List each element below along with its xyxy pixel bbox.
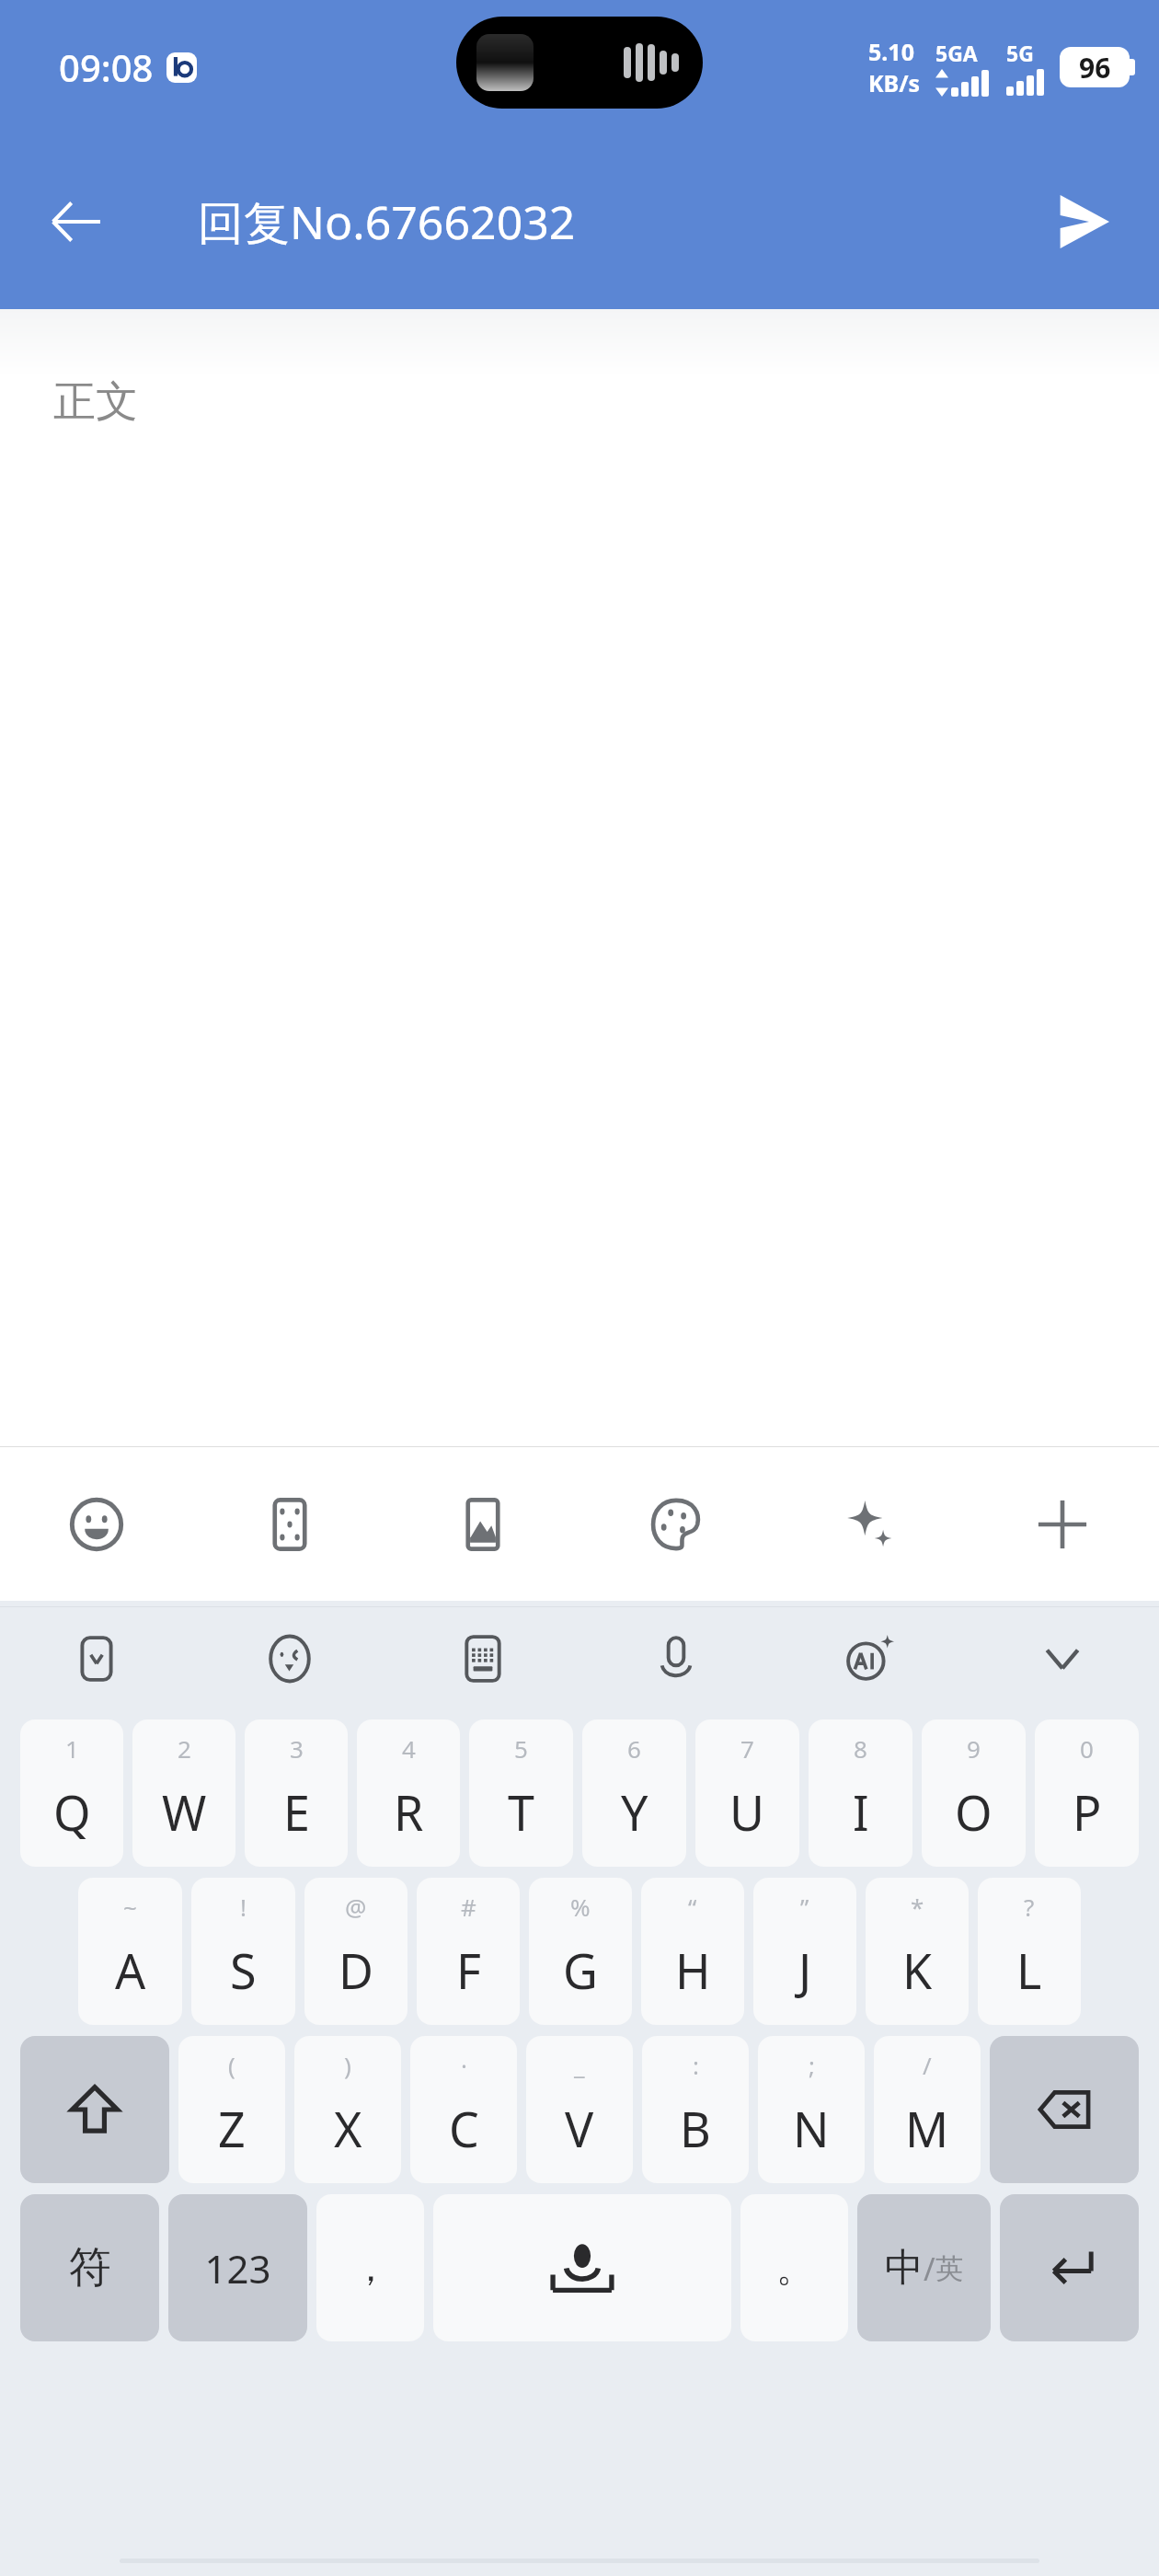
staticText: · <box>461 2049 467 2081</box>
button[interactable]: ? <box>978 1878 1081 2025</box>
button[interactable]: 。 <box>740 2194 848 2341</box>
button[interactable]: 7 <box>695 1719 799 1867</box>
staticText: D <box>339 1938 373 2003</box>
button[interactable]: 0 <box>1035 1719 1139 1867</box>
staticText: Y <box>621 1779 648 1845</box>
staticText: ! <box>240 1891 247 1923</box>
button[interactable]: Clipboard <box>0 1607 193 1710</box>
staticText: ) <box>344 2049 351 2081</box>
staticText: K <box>902 1938 933 2003</box>
button[interactable]: # <box>417 1878 520 2025</box>
staticText: S <box>230 1938 257 2003</box>
staticText: 英 <box>935 2251 963 2286</box>
button[interactable]: % <box>529 1878 632 2025</box>
button[interactable]: Image <box>386 1447 579 1601</box>
button[interactable]: / <box>874 2036 981 2183</box>
staticText: 5GA <box>935 39 978 67</box>
staticText: ， <box>352 2245 389 2291</box>
staticText: 符 <box>69 2241 111 2294</box>
button[interactable]: AI assistant <box>773 1607 966 1710</box>
staticText: U <box>729 1779 765 1845</box>
staticText: ( <box>228 2049 235 2081</box>
button[interactable]: ， <box>316 2194 424 2341</box>
button[interactable]: Shift <box>20 2036 169 2183</box>
staticText: # <box>461 1891 476 1923</box>
staticText: 1 <box>65 1732 79 1765</box>
staticText: B <box>680 2096 711 2161</box>
staticText: 9 <box>967 1732 981 1765</box>
button[interactable]: * <box>866 1878 969 2025</box>
button[interactable]: Voice input <box>579 1607 773 1710</box>
button[interactable]: “ <box>641 1878 744 2025</box>
button[interactable]: Emoji <box>193 1607 386 1710</box>
staticText: 7 <box>740 1732 754 1765</box>
staticText: E <box>283 1779 310 1845</box>
button[interactable]: _ <box>526 2036 633 2183</box>
staticText: % <box>570 1891 591 1923</box>
button[interactable]: ; <box>758 2036 865 2183</box>
button[interactable]: Back <box>37 183 114 260</box>
button[interactable]: ” <box>753 1878 856 2025</box>
button[interactable]: Palette <box>579 1447 773 1601</box>
staticText: 4 <box>402 1732 416 1765</box>
button[interactable]: Space <box>433 2194 731 2341</box>
button[interactable]: Enter <box>1000 2194 1139 2341</box>
button[interactable]: 符 <box>20 2194 159 2341</box>
staticText: _ <box>574 2049 585 2081</box>
button[interactable]: 4 <box>357 1719 460 1867</box>
button[interactable]: ! <box>191 1878 295 2025</box>
button[interactable]: : <box>642 2036 749 2183</box>
staticText: 3 <box>290 1732 304 1765</box>
button[interactable]: · <box>410 2036 517 2183</box>
staticText: 09:08 <box>59 42 154 92</box>
button[interactable]: 8 <box>809 1719 912 1867</box>
button[interactable]: ) <box>294 2036 401 2183</box>
staticText: T <box>508 1779 534 1845</box>
button[interactable]: 1 <box>20 1719 123 1867</box>
staticText: H <box>675 1938 711 2003</box>
staticText: V <box>565 2096 594 2161</box>
staticText: KB/s <box>868 67 921 98</box>
button[interactable]: ( <box>178 2036 285 2183</box>
staticText: P <box>1073 1779 1102 1845</box>
staticText: W <box>162 1779 207 1845</box>
button[interactable]: Send <box>1041 180 1124 263</box>
staticText: L <box>1016 1938 1042 2003</box>
button[interactable]: 3 <box>245 1719 348 1867</box>
button[interactable]: 中 <box>857 2194 991 2341</box>
staticText: Z <box>218 2096 246 2161</box>
button[interactable]: 2 <box>132 1719 235 1867</box>
button[interactable]: 5 <box>469 1719 573 1867</box>
staticText: G <box>563 1938 598 2003</box>
staticText: 0 <box>1080 1732 1094 1765</box>
button[interactable]: Keyboard layout <box>386 1607 579 1710</box>
staticText: F <box>456 1938 481 2003</box>
staticText: 中 <box>885 2244 924 2293</box>
staticText: * <box>911 1891 924 1923</box>
button[interactable]: Emoji <box>0 1447 193 1601</box>
button[interactable]: 6 <box>582 1719 686 1867</box>
button[interactable]: ~ <box>78 1878 182 2025</box>
staticText: 5G <box>1006 39 1034 67</box>
staticText: 5 <box>514 1732 528 1765</box>
button[interactable]: Backspace <box>990 2036 1139 2183</box>
staticText: ? <box>1024 1891 1035 1923</box>
staticText: O <box>955 1779 993 1845</box>
staticText: X <box>334 2096 362 2161</box>
staticText: / <box>924 2248 935 2290</box>
button[interactable]: AI <box>773 1447 966 1601</box>
staticText: 正文 <box>53 375 138 429</box>
button[interactable]: 9 <box>922 1719 1026 1867</box>
staticText: / <box>923 2049 932 2081</box>
staticText: ; <box>809 2049 815 2081</box>
button[interactable]: 123 <box>168 2194 307 2341</box>
staticText: N <box>793 2096 830 2161</box>
button[interactable]: Dice <box>193 1447 386 1601</box>
button[interactable]: More <box>966 1447 1159 1601</box>
button[interactable]: @ <box>304 1878 407 2025</box>
staticText: M <box>905 2096 949 2161</box>
button[interactable]: Hide keyboard <box>966 1607 1159 1710</box>
staticText: 6 <box>627 1732 641 1765</box>
staticText: 96 <box>1079 49 1111 86</box>
button[interactable]: 正文 <box>0 309 1159 1446</box>
